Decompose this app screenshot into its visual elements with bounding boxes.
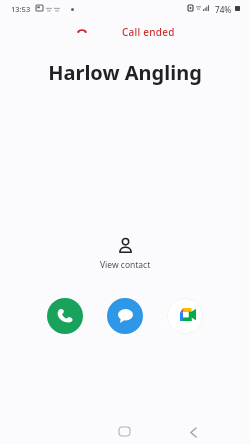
staticText: 74% xyxy=(215,4,232,15)
button[interactable]: Back xyxy=(183,422,203,442)
button[interactable]: View contact xyxy=(90,234,161,275)
staticText: View contact xyxy=(100,259,151,271)
staticText: Call ended xyxy=(122,25,175,39)
button[interactable]: Video call xyxy=(167,298,203,334)
button[interactable]: Message xyxy=(107,298,143,334)
staticText: 13:53 xyxy=(11,4,31,14)
button[interactable]: Home xyxy=(114,421,134,441)
staticText: Harlow Angling xyxy=(0,59,250,86)
button[interactable]: Call xyxy=(47,298,83,334)
